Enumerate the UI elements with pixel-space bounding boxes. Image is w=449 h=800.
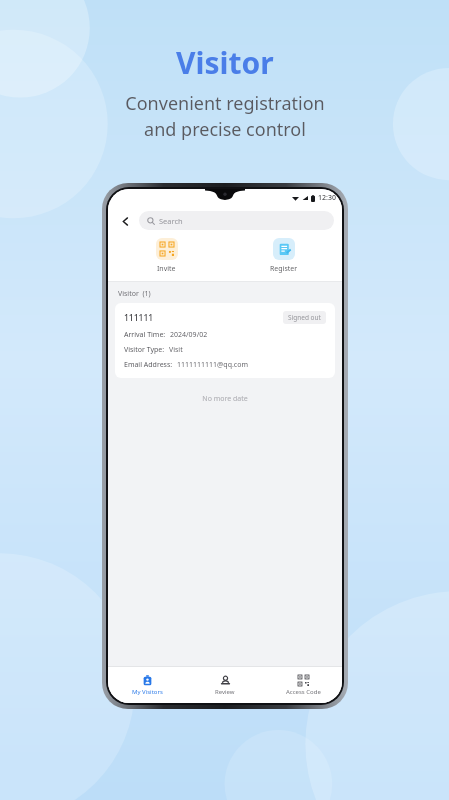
staticText: Register xyxy=(270,264,298,274)
button[interactable]: My Visitors xyxy=(108,667,186,703)
staticText: Convenient registration and precise cont… xyxy=(125,91,325,141)
staticText: Visitor xyxy=(176,42,274,83)
staticText: No more date xyxy=(108,394,342,404)
staticText: 12:30 xyxy=(318,193,336,203)
staticText: Visit xyxy=(169,345,183,355)
staticText: Search xyxy=(159,216,183,226)
staticText: Email Address: xyxy=(124,360,173,370)
staticText: 111111 xyxy=(124,312,154,324)
staticText: Arrival Time: xyxy=(124,330,166,340)
staticText: Signed out xyxy=(288,313,321,322)
button[interactable]: Back xyxy=(116,212,134,230)
staticText: Access Code xyxy=(286,688,321,696)
button[interactable]: Access Code xyxy=(264,667,342,703)
staticText: Invite xyxy=(157,264,176,274)
button[interactable]: Register xyxy=(225,238,342,274)
staticText: 1111111111@qq.com xyxy=(177,360,248,370)
staticText: Visitor Type: xyxy=(124,345,165,355)
button[interactable]: Review xyxy=(186,667,264,703)
button[interactable]: Search xyxy=(139,211,334,230)
button[interactable]: 111111 xyxy=(115,303,335,378)
staticText: 2024/09/02 xyxy=(170,330,208,340)
staticText: Visitor (1) xyxy=(118,289,151,299)
button[interactable]: Invite xyxy=(108,238,225,274)
staticText: My Visitors xyxy=(132,688,163,696)
staticText: Review xyxy=(215,688,235,696)
